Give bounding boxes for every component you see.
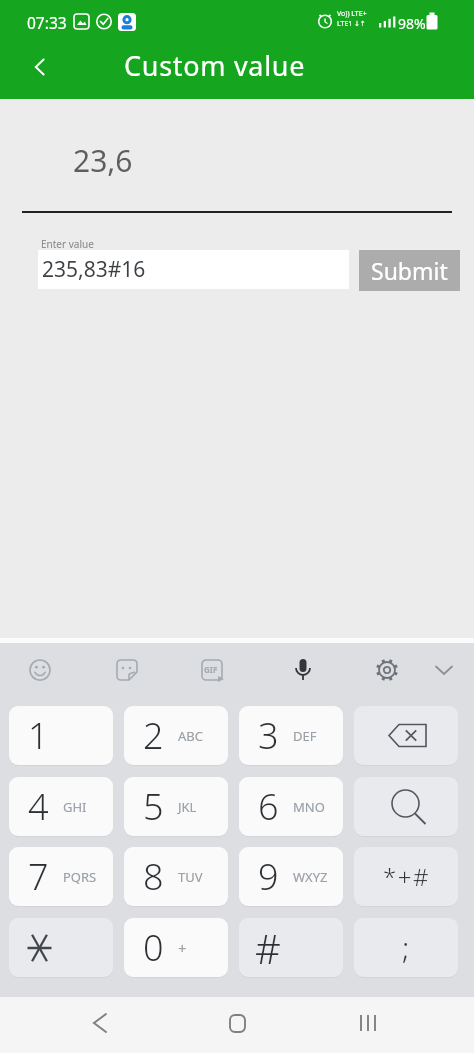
- staticText: JKL: [178, 798, 197, 816]
- staticText: 1: [28, 711, 49, 760]
- staticText: 9: [258, 852, 279, 901]
- staticText: 7: [28, 852, 49, 901]
- button[interactable]: [365, 648, 409, 692]
- button[interactable]: [422, 648, 466, 692]
- button[interactable]: [338, 995, 398, 1051]
- staticText: ABC: [178, 727, 203, 745]
- button[interactable]: 9: [239, 847, 343, 906]
- button[interactable]: 4: [9, 777, 113, 836]
- button[interactable]: [105, 648, 149, 692]
- staticText: PQRS: [63, 868, 97, 886]
- button[interactable]: #: [239, 918, 343, 977]
- button[interactable]: 5: [124, 777, 228, 836]
- button[interactable]: [20, 48, 60, 86]
- staticText: 6: [258, 782, 279, 831]
- staticText: GIF: [204, 664, 218, 675]
- staticText: 5: [143, 782, 164, 831]
- button[interactable]: 7: [9, 847, 113, 906]
- button[interactable]: 8: [124, 847, 228, 906]
- staticText: 23,6: [73, 140, 133, 181]
- button[interactable]: 3: [239, 706, 343, 765]
- button[interactable]: [18, 648, 62, 692]
- staticText: TUV: [178, 868, 203, 886]
- staticText: 4: [28, 782, 49, 831]
- staticText: MNO: [293, 798, 325, 816]
- button[interactable]: [190, 648, 234, 692]
- staticText: Vo)) LTE+: [337, 9, 367, 19]
- staticText: #: [255, 921, 281, 975]
- staticText: 235,83#16: [42, 255, 146, 284]
- button[interactable]: 1: [9, 706, 113, 765]
- button[interactable]: [354, 706, 458, 765]
- button[interactable]: ;: [354, 918, 458, 977]
- staticText: *+#: [383, 860, 430, 893]
- staticText: ;: [402, 927, 410, 968]
- staticText: 2: [143, 711, 164, 760]
- staticText: Custom value: [124, 47, 306, 84]
- button[interactable]: 2: [124, 706, 228, 765]
- staticText: 0: [143, 923, 164, 972]
- staticText: GHI: [63, 798, 87, 816]
- button[interactable]: [281, 648, 325, 692]
- staticText: 3: [258, 711, 279, 760]
- staticText: DEF: [293, 727, 317, 745]
- staticText: 98%: [398, 14, 426, 33]
- button[interactable]: 6: [239, 777, 343, 836]
- staticText: LTE1 ↓↑: [337, 19, 366, 29]
- staticText: 07:33: [27, 12, 67, 33]
- staticText: 8: [143, 852, 164, 901]
- staticText: WXYZ: [293, 868, 328, 886]
- button[interactable]: [354, 777, 458, 836]
- staticText: Submit: [371, 255, 448, 286]
- button[interactable]: [207, 995, 267, 1051]
- button[interactable]: *+#: [354, 847, 458, 906]
- button[interactable]: 0: [124, 918, 228, 977]
- button[interactable]: [9, 918, 113, 977]
- staticText: +: [178, 938, 187, 958]
- button[interactable]: 235,83#16: [38, 250, 349, 289]
- button[interactable]: [70, 995, 130, 1051]
- button[interactable]: Submit: [359, 250, 460, 291]
- staticText: Enter value: [41, 237, 94, 251]
